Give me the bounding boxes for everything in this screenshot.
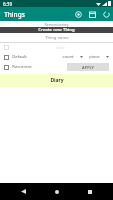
staticText: Remembering [44, 22, 69, 27]
staticText: APPLY [82, 65, 94, 70]
staticText: Default [12, 54, 27, 60]
button[interactable]: Create new Thing [0, 27, 113, 33]
staticText: Things [4, 10, 25, 19]
button[interactable]: Recents [80, 183, 100, 200]
staticText: count [62, 54, 74, 60]
button[interactable]: Home [47, 183, 67, 200]
staticText: 6:39 [3, 1, 12, 7]
staticText: Diary [50, 77, 64, 84]
button[interactable]: Refresh [99, 7, 113, 21]
button[interactable]: Add [71, 7, 85, 21]
button[interactable]: Calendar [85, 7, 99, 21]
staticText: piece [89, 54, 100, 60]
staticText: time [56, 45, 65, 50]
staticText: Create new Thing [38, 27, 75, 33]
button[interactable]: APPLY [67, 63, 109, 71]
button[interactable]: Back [13, 183, 33, 200]
staticText: Recurrent [12, 64, 32, 70]
staticText: Thing name [45, 35, 69, 41]
